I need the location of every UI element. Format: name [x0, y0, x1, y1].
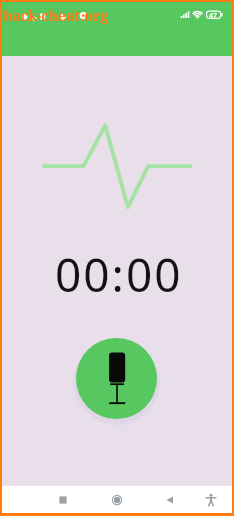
- button[interactable]: Back: [148, 486, 192, 513]
- button[interactable]: Home: [95, 486, 139, 513]
- button[interactable]: Recents: [41, 486, 85, 513]
- button[interactable]: Start recording: [76, 338, 157, 419]
- button[interactable]: Accessibility: [189, 486, 233, 513]
- staticText: hack-cheat.org: [3, 6, 109, 25]
- staticText: 00:00: [55, 243, 183, 306]
- staticText: 47: [209, 11, 218, 21]
